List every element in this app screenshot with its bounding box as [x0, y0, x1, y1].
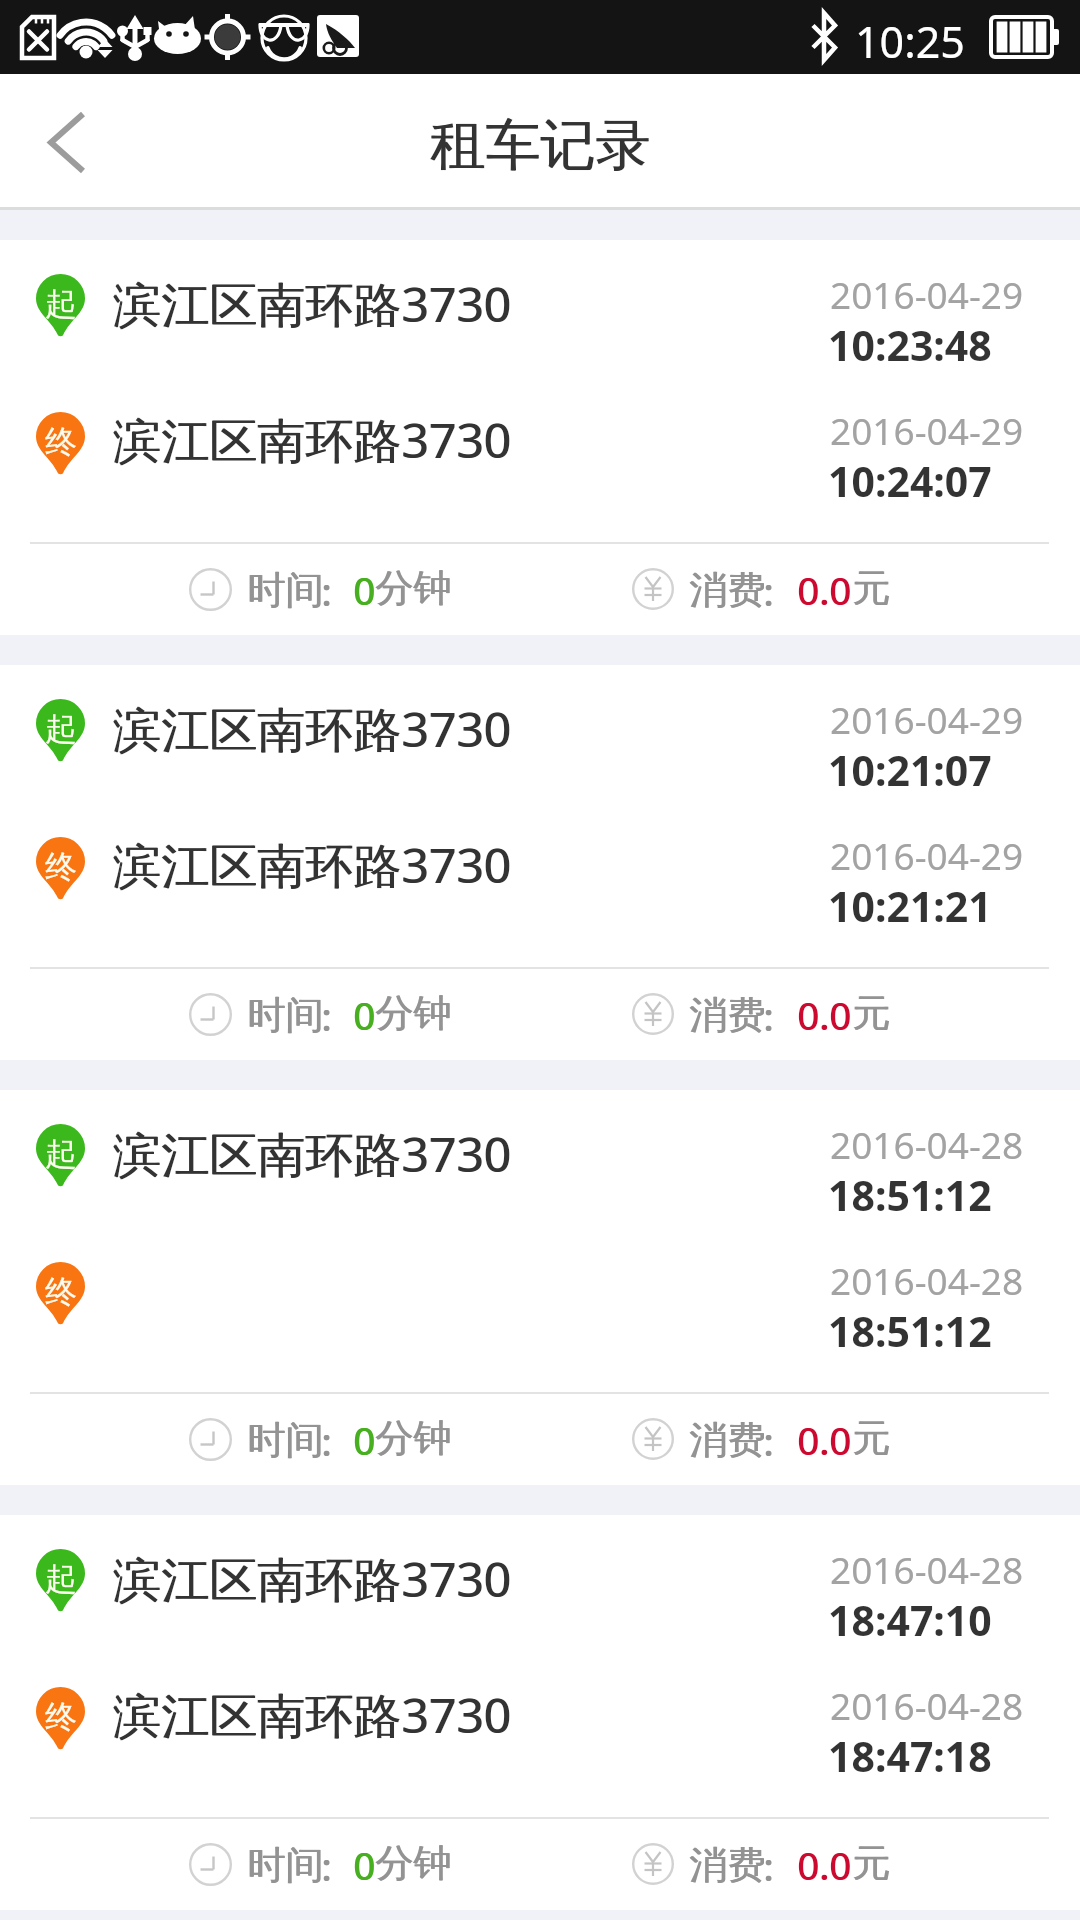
staticText: 0 — [353, 1839, 375, 1891]
staticText: 起 — [45, 284, 77, 324]
staticText: 消费 — [690, 566, 766, 614]
button[interactable]: 起 — [0, 1090, 1080, 1485]
staticText: 0.0 — [797, 989, 851, 1041]
staticText: : — [322, 565, 333, 617]
staticText: : — [322, 990, 333, 1042]
staticText: 滨江区南环路3730 — [113, 1682, 511, 1748]
staticText: 2016-04-29 — [830, 269, 1024, 319]
staticText: : — [321, 1840, 332, 1892]
staticText: 分钟 — [376, 1414, 452, 1462]
staticText: 0.0 — [798, 989, 852, 1041]
staticText: 时间 — [247, 1841, 323, 1889]
staticText: 0.0 — [798, 1414, 852, 1466]
staticText: 0 — [353, 564, 375, 616]
staticText: 终 — [45, 1697, 77, 1737]
staticText: 时间 — [247, 1416, 323, 1464]
staticText: 2016-04-29 — [830, 694, 1024, 744]
staticText: 10:23:48 — [828, 317, 992, 373]
staticText: 滨江区南环路3730 — [113, 1121, 511, 1187]
staticText: 起 — [45, 709, 77, 749]
staticText: 分钟 — [376, 989, 452, 1037]
staticText: 0.0 — [797, 564, 851, 616]
staticText: : — [763, 1415, 774, 1467]
staticText: 分钟 — [376, 564, 452, 612]
staticText: 0.0 — [798, 564, 852, 616]
staticText: 分钟 — [375, 1839, 451, 1887]
staticText: 元 — [853, 564, 891, 612]
staticText: 消费 — [689, 566, 765, 614]
staticText: 0 — [353, 1414, 375, 1466]
staticText: 元 — [852, 1414, 890, 1462]
staticText: 消费 — [689, 1841, 765, 1889]
staticText: 租车记录 — [431, 111, 651, 180]
button[interactable]: 起 — [0, 665, 1080, 1060]
staticText: : — [763, 1840, 774, 1892]
staticText: 10:21:21 — [828, 878, 992, 934]
staticText: 0.0 — [798, 1839, 852, 1891]
staticText: 时间 — [248, 991, 324, 1039]
staticText: 终 — [45, 422, 77, 462]
staticText: 时间 — [247, 566, 323, 614]
staticText: 0.0 — [797, 1414, 851, 1466]
staticText: 0 — [354, 1839, 376, 1891]
staticText: 时间 — [247, 991, 323, 1039]
staticText: 分钟 — [375, 989, 451, 1037]
staticText: 18:47:10 — [828, 1592, 992, 1648]
staticText: : — [764, 990, 775, 1042]
staticText: 滨江区南环路3730 — [114, 696, 512, 762]
staticText: : — [764, 1840, 775, 1892]
staticText: 元 — [852, 1839, 890, 1887]
staticText: 分钟 — [376, 1839, 452, 1887]
staticText: 滨江区南环路3730 — [113, 407, 511, 473]
staticText: 0 — [354, 564, 376, 616]
staticText: 10:21:07 — [828, 742, 992, 798]
staticText: 分钟 — [375, 564, 451, 612]
staticText: 10:24:07 — [828, 453, 992, 509]
staticText: : — [321, 1415, 332, 1467]
button[interactable]: Back — [0, 74, 130, 207]
staticText: : — [322, 1840, 333, 1892]
staticText: 滨江区南环路3730 — [114, 407, 512, 473]
staticText: 起 — [45, 1134, 77, 1174]
staticText: 元 — [853, 989, 891, 1037]
staticText: 2016-04-28 — [830, 1255, 1024, 1305]
staticText: 终 — [45, 1272, 77, 1312]
staticText: 18:51:12 — [828, 1303, 992, 1359]
staticText: : — [764, 1415, 775, 1467]
staticText: 滨江区南环路3730 — [113, 696, 511, 762]
staticText: : — [321, 990, 332, 1042]
staticText: 18:51:12 — [828, 1167, 992, 1223]
staticText: : — [763, 565, 774, 617]
staticText: : — [321, 565, 332, 617]
staticText: : — [322, 1415, 333, 1467]
staticText: 0.0 — [797, 1839, 851, 1891]
staticText: 消费 — [690, 991, 766, 1039]
staticText: 2016-04-28 — [830, 1544, 1024, 1594]
staticText: 滨江区南环路3730 — [114, 271, 512, 337]
staticText: 2016-04-29 — [830, 405, 1024, 455]
staticText: 10:25 — [855, 12, 965, 71]
staticText: 租车记录 — [430, 111, 650, 180]
staticText: 消费 — [690, 1841, 766, 1889]
staticText: 元 — [853, 1839, 891, 1887]
staticText: 滨江区南环路3730 — [114, 832, 512, 898]
staticText: 18:47:18 — [828, 1728, 992, 1784]
staticText: 0 — [353, 989, 375, 1041]
staticText: 时间 — [248, 1416, 324, 1464]
button[interactable]: 起 — [0, 240, 1080, 635]
staticText: 消费 — [689, 991, 765, 1039]
staticText: 0 — [354, 1414, 376, 1466]
staticText: 滨江区南环路3730 — [113, 271, 511, 337]
staticText: 元 — [852, 989, 890, 1037]
staticText: 滨江区南环路3730 — [113, 832, 511, 898]
staticText: 元 — [853, 1414, 891, 1462]
button[interactable]: 起 — [0, 1515, 1080, 1910]
staticText: 起 — [45, 1559, 77, 1599]
staticText: 消费 — [689, 1416, 765, 1464]
staticText: 2016-04-29 — [830, 830, 1024, 880]
staticText: 滨江区南环路3730 — [114, 1121, 512, 1187]
staticText: 2016-04-28 — [830, 1680, 1024, 1730]
staticText: 分钟 — [375, 1414, 451, 1462]
staticText: 滨江区南环路3730 — [114, 1546, 512, 1612]
staticText: 2016-04-28 — [830, 1119, 1024, 1169]
